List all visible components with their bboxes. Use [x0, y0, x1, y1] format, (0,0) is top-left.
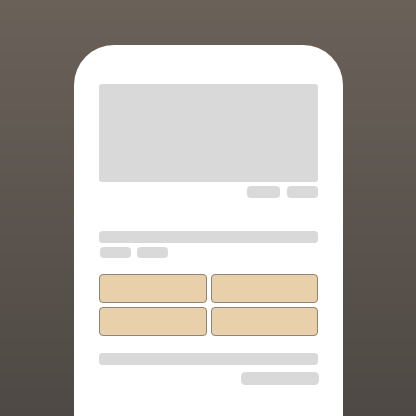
button[interactable]: Category	[100, 247, 131, 258]
button[interactable]: Rating	[137, 247, 168, 258]
button[interactable]: Option 4	[211, 307, 318, 336]
button[interactable]: Save	[287, 186, 318, 198]
button[interactable]: Option 2	[211, 274, 318, 303]
button[interactable]: Share	[247, 186, 280, 198]
button[interactable]: Add to cart	[241, 372, 319, 385]
button[interactable]: Option 1	[99, 274, 207, 303]
button[interactable]: Option 3	[99, 307, 207, 336]
